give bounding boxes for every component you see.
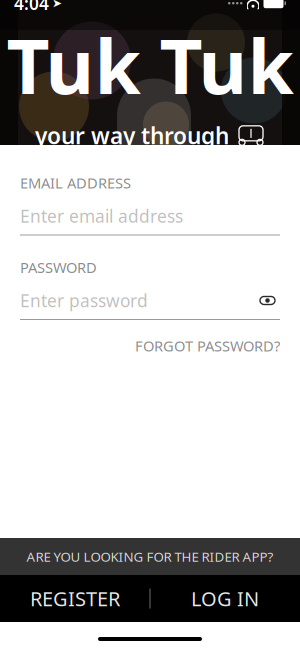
button[interactable]: Show password [255,291,280,309]
staticText: 4:04 [14,0,49,15]
button[interactable]: ARE YOU LOOKING FOR THE RIDER APP? [0,538,300,575]
button[interactable]: FORGOT PASSWORD? [135,330,280,361]
staticText: your way through [35,120,229,151]
staticText: LOG IN [191,585,259,612]
staticText: Enter password [20,289,148,312]
staticText: REGISTER [30,585,120,612]
staticText: EMAIL ADDRESS [20,173,131,192]
button[interactable]: REGISTER [0,575,149,622]
staticText: Enter email address [20,204,183,227]
staticText: FORGOT PASSWORD? [135,336,280,355]
staticText: ARE YOU LOOKING FOR THE RIDER APP? [26,548,273,565]
staticText: PASSWORD [20,257,97,277]
staticText: ➤ [52,0,62,10]
button[interactable]: LOG IN [150,575,299,622]
staticText: Tuk Tuk [6,14,293,116]
